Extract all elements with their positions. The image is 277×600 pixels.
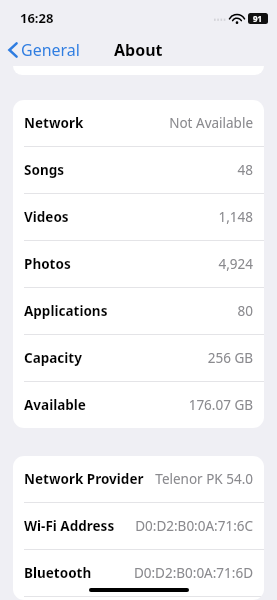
staticText: Applications [24,302,108,320]
button[interactable]: Capacity [13,335,264,382]
staticText: About [114,39,163,61]
other: Back to General [8,42,18,58]
staticText: Bluetooth [24,564,92,582]
staticText: 256 GB [88,349,253,367]
staticText: 1,148 [75,208,253,226]
staticText: D0:D2:B0:0A:71:6D [98,564,253,582]
staticText: Network Provider [24,470,144,488]
staticText: Photos [24,255,71,273]
button[interactable]: Bluetooth [13,550,264,597]
staticText: Available [24,396,86,414]
button[interactable]: Available [13,382,264,428]
staticText: Songs [24,161,64,179]
staticText: 4,924 [77,255,253,273]
staticText: Telenor PK 54.0 [150,470,253,488]
staticText: 80 [114,302,253,320]
staticText: 176.07 GB [92,396,253,414]
button[interactable]: Back to General [0,34,92,66]
staticText: Capacity [24,349,82,367]
staticText: Wi-Fi Address [24,517,115,535]
button[interactable]: Network [13,100,264,147]
staticText: 91 [253,13,263,24]
staticText: Not Available [90,114,253,132]
staticText: 48 [70,161,253,179]
staticText: General [21,39,80,61]
button[interactable]: Photos [13,241,264,288]
staticText: Videos [24,208,69,226]
button[interactable]: Songs [13,147,264,194]
button[interactable]: Applications [13,288,264,335]
button[interactable]: Network Provider [13,456,264,503]
button[interactable]: Wi-Fi Address [13,503,264,550]
staticText: 16:28 [20,9,54,27]
staticText: Network [24,114,84,132]
staticText: D0:D2:B0:0A:71:6C [121,517,253,535]
button[interactable]: Videos [13,194,264,241]
